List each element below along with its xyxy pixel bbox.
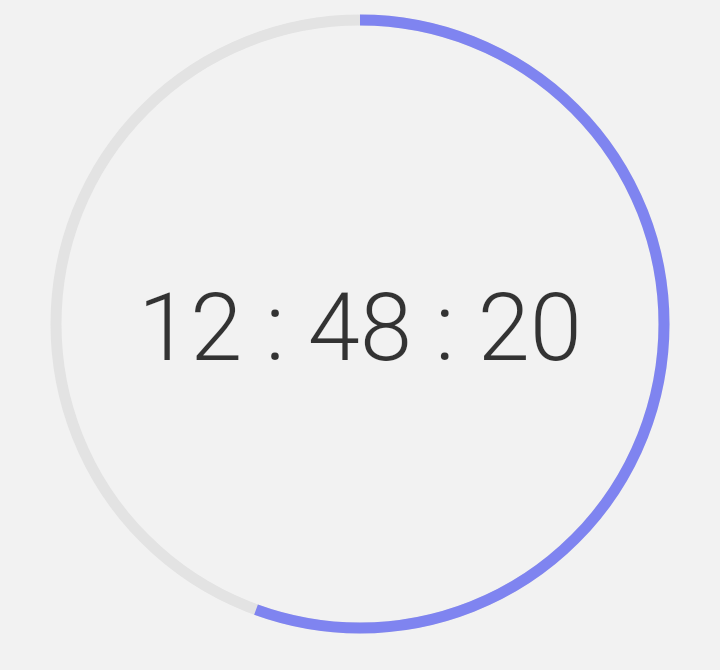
staticText: 12 : 48 : 20 — [138, 273, 582, 383]
button[interactable]: 12 : 48 : 20 — [138, 273, 582, 383]
